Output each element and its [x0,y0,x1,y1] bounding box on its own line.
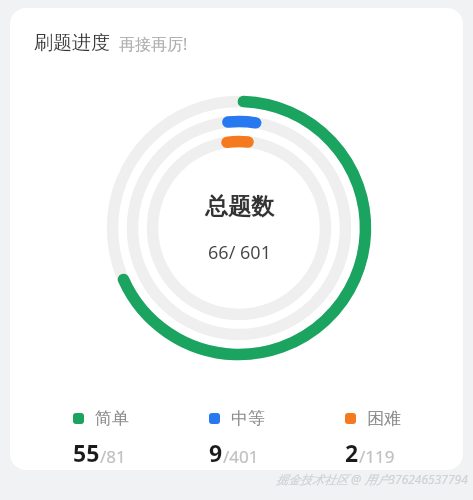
staticText: 55 [73,437,100,468]
staticText: 再接再厉! [119,33,188,55]
staticText: 总题数 [205,192,274,221]
staticText: 刷题进度 [34,31,110,55]
staticText: /81 [100,445,126,468]
staticText: /119 [359,445,395,468]
button[interactable]: 简单 [73,408,183,468]
button[interactable]: 中等 [209,408,319,468]
staticText: 9 [209,437,223,468]
staticText: 困难 [367,408,401,429]
button[interactable]: 刷题进度环形图 [107,96,371,360]
staticText: 2 [345,437,359,468]
staticText: /401 [223,445,259,468]
staticText: 简单 [95,408,129,429]
staticText: 掘金技术社区 @ 用户376246537794 [276,471,468,487]
button[interactable]: 困难 [345,408,455,468]
staticText: 中等 [231,408,265,429]
staticText: 66/ 601 [208,240,271,265]
button[interactable]: 刷题进度 [34,31,188,55]
